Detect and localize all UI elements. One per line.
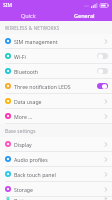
staticText: Battery [14, 197, 104, 200]
button[interactable]: Bluetooth [0, 64, 112, 78]
staticText: Audio profiles [14, 156, 104, 163]
button[interactable]: Wi-Fi [0, 49, 112, 63]
staticText: Wi-Fi [14, 53, 97, 60]
button[interactable] [97, 68, 108, 74]
staticText: Base settings [5, 128, 36, 134]
staticText: More ... [14, 113, 104, 120]
staticText: Storage [14, 186, 104, 193]
button[interactable]: Display [0, 137, 112, 151]
button[interactable]: Quick [0, 10, 56, 21]
button[interactable]: Three notification LEDS [0, 79, 112, 93]
button[interactable]: General [56, 10, 112, 21]
button[interactable] [97, 83, 108, 89]
button[interactable]: Back touch panel [0, 167, 112, 181]
button[interactable]: SIM management [0, 34, 112, 48]
button[interactable] [97, 53, 108, 59]
staticText: Back touch panel [14, 171, 104, 178]
staticText: SIM management [14, 38, 104, 45]
staticText: Quick [21, 12, 36, 19]
button[interactable]: More ... [0, 109, 112, 123]
staticText: Bluetooth [14, 68, 97, 75]
button[interactable]: Data usage [0, 94, 112, 108]
staticText: General [74, 12, 95, 19]
button[interactable]: Battery [0, 197, 112, 200]
button[interactable]: Storage [0, 182, 112, 196]
staticText: SIM [3, 2, 13, 9]
staticText: Three notification LEDS [14, 83, 97, 90]
staticText: WIRELESS & NETWORKS [5, 25, 60, 31]
button[interactable]: Audio profiles [0, 152, 112, 166]
staticText: Data usage [14, 98, 104, 105]
staticText: Display [14, 141, 104, 148]
